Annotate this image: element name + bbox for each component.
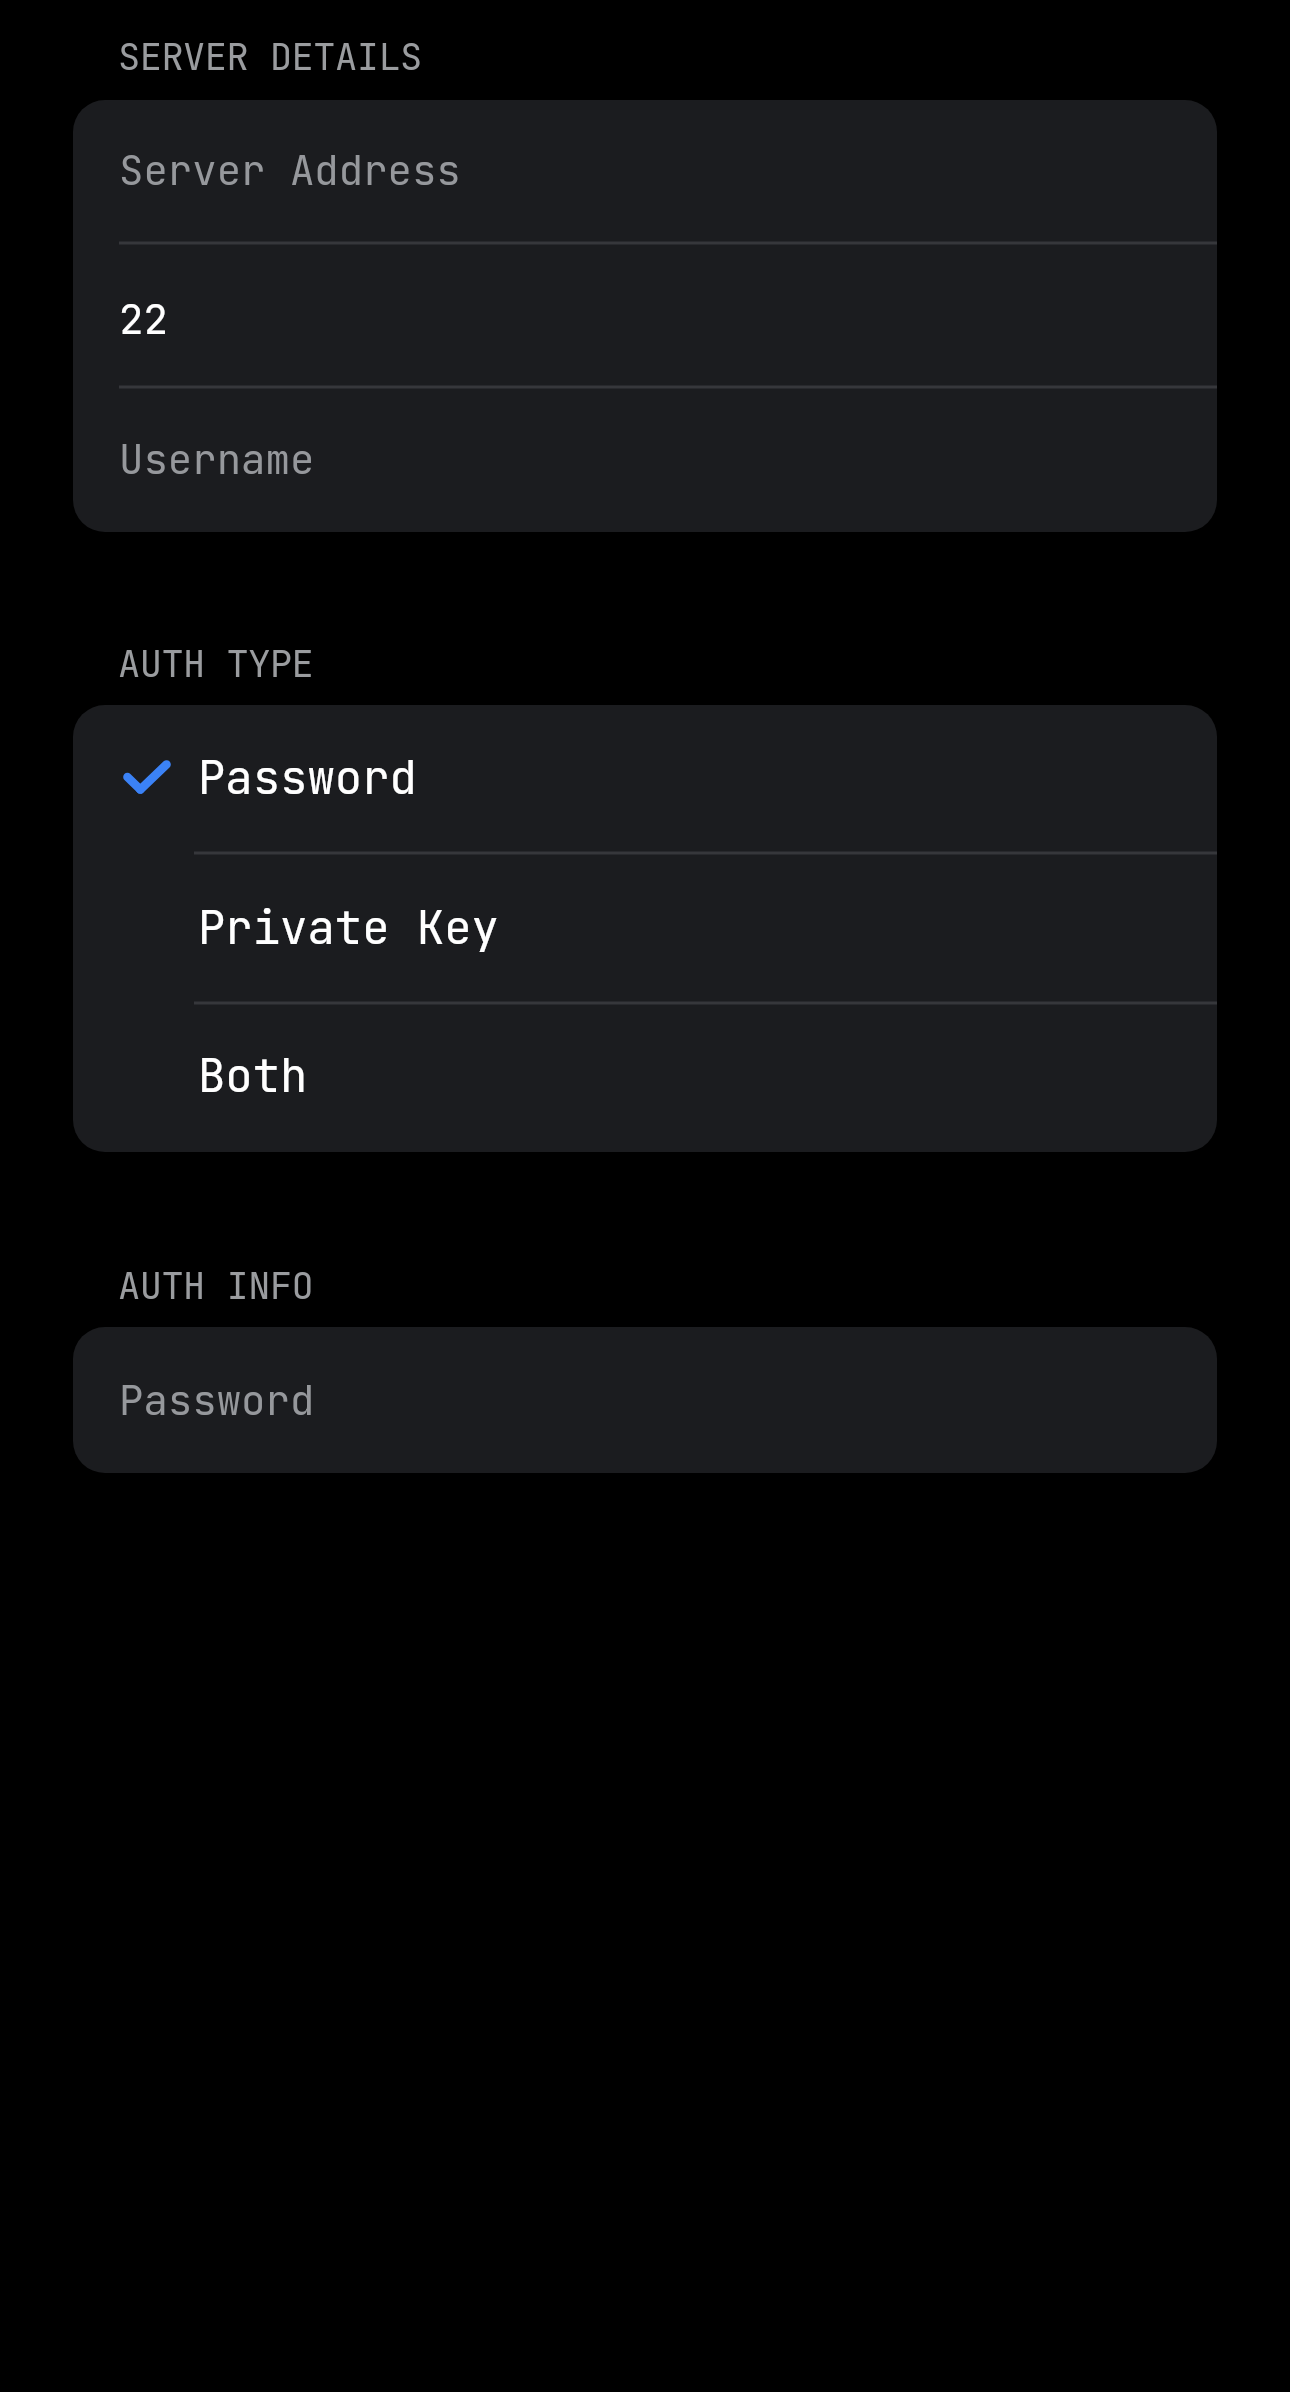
button[interactable]: Password (73, 1327, 1217, 1473)
staticText: Server Address (119, 143, 461, 197)
button[interactable]: Server Address (73, 100, 1217, 241)
button[interactable]: Selected (73, 705, 1217, 851)
button[interactable]: 22 (73, 245, 1217, 385)
other: Selected (123, 760, 171, 794)
staticText: Both (198, 1045, 308, 1105)
staticText: Private Key (198, 897, 499, 957)
button[interactable]: Both (73, 1005, 1217, 1152)
staticText: Username (119, 432, 315, 486)
button[interactable]: Username (73, 389, 1217, 532)
staticText: AUTH INFO (118, 1261, 314, 1310)
staticText: AUTH TYPE (118, 639, 314, 688)
staticText: 22 (119, 292, 168, 346)
staticText: Password (119, 1373, 315, 1427)
button[interactable]: Private Key (73, 855, 1217, 1001)
staticText: SERVER DETAILS (118, 32, 422, 81)
staticText: Password (198, 747, 417, 807)
